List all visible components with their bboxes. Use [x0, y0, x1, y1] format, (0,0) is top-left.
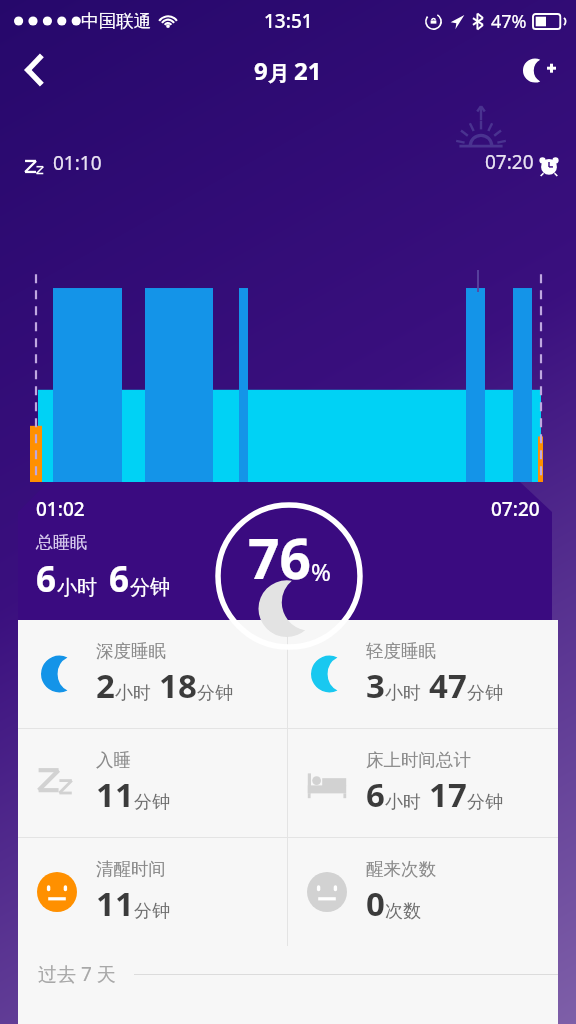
button[interactable]: 轻度睡眠: [288, 620, 558, 728]
button[interactable]: 醒来次数: [288, 838, 558, 946]
button[interactable]: 床上时间总计: [288, 729, 558, 837]
staticText: 深度睡眠: [96, 640, 166, 662]
staticText: 分钟: [130, 575, 170, 600]
staticText: 6: [36, 555, 57, 603]
staticText: 6: [109, 555, 130, 603]
button[interactable]: Add sleep: [514, 44, 566, 96]
staticText: 清醒时间: [96, 858, 166, 880]
staticText: 17: [429, 772, 467, 817]
staticText: 小时: [57, 575, 97, 600]
staticText: 分钟: [134, 791, 170, 814]
staticText: 小时: [385, 682, 421, 705]
staticText: 次数: [385, 900, 421, 923]
staticText: 21: [294, 54, 322, 87]
staticText: 中国联通: [81, 10, 151, 32]
staticText: 11: [96, 772, 134, 817]
staticText: 11: [96, 881, 134, 926]
button[interactable]: 深度睡眠: [18, 620, 287, 728]
button[interactable]: 过去 7 天: [18, 946, 558, 1002]
staticText: 床上时间总计: [366, 749, 471, 771]
staticText: 分钟: [467, 682, 503, 705]
button[interactable]: 清醒时间: [18, 838, 287, 946]
staticText: 18: [159, 663, 197, 708]
staticText: 分钟: [467, 791, 503, 814]
staticText: 47: [429, 663, 467, 708]
staticText: 过去 7 天: [38, 961, 116, 987]
staticText: 月: [268, 61, 289, 87]
staticText: 13:51: [264, 8, 313, 34]
staticText: 小时: [385, 791, 421, 814]
staticText: 07:20: [491, 496, 540, 522]
staticText: %: [311, 555, 331, 588]
staticText: 76: [248, 520, 311, 595]
staticText: 轻度睡眠: [366, 640, 436, 662]
staticText: 01:02: [36, 496, 85, 522]
staticText: 分钟: [134, 900, 170, 923]
staticText: 2: [96, 663, 115, 708]
staticText: 3: [366, 663, 385, 708]
staticText: 总睡眠: [36, 532, 87, 553]
staticText: 01:10: [53, 150, 102, 176]
staticText: 47%: [491, 9, 527, 34]
button[interactable]: Sleep score 76 percent: [215, 502, 363, 650]
staticText: 6: [366, 772, 385, 817]
staticText: 0: [366, 881, 385, 926]
staticText: 入睡: [96, 749, 131, 771]
staticText: 07:20: [485, 149, 534, 175]
staticText: 9: [254, 54, 268, 87]
staticText: 小时: [115, 682, 151, 705]
staticText: 分钟: [197, 682, 233, 705]
button[interactable]: Back: [8, 44, 60, 96]
button[interactable]: 入睡: [18, 729, 287, 837]
staticText: 醒来次数: [366, 858, 436, 880]
